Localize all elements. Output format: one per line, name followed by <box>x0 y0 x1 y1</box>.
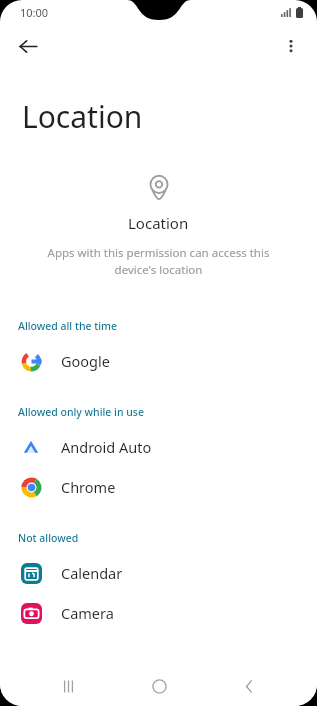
button[interactable]: Home <box>137 666 181 706</box>
button[interactable]: Recent apps <box>46 666 90 706</box>
staticText: Chrome <box>61 477 116 497</box>
staticText: Calendar <box>61 563 123 583</box>
button[interactable]: Calendar <box>0 553 317 593</box>
button[interactable]: Camera <box>0 593 317 633</box>
staticText: 10:00 <box>20 5 49 20</box>
button[interactable]: Back <box>10 28 46 64</box>
staticText: Android Auto <box>61 437 152 457</box>
staticText: Google <box>61 351 110 371</box>
staticText: Allowed all the time <box>18 319 118 333</box>
button[interactable]: Chrome <box>0 467 317 507</box>
staticText: Camera <box>61 603 114 623</box>
staticText: Location <box>22 96 143 137</box>
button[interactable]: Android Auto <box>0 427 317 467</box>
staticText: Allowed only while in use <box>18 405 144 419</box>
button[interactable]: Google <box>0 341 317 381</box>
staticText: Apps with this permission can access thi… <box>34 245 283 277</box>
staticText: Location <box>128 213 189 233</box>
button[interactable]: More options <box>273 28 309 64</box>
staticText: Not allowed <box>18 531 79 545</box>
button[interactable]: Back <box>227 666 271 706</box>
